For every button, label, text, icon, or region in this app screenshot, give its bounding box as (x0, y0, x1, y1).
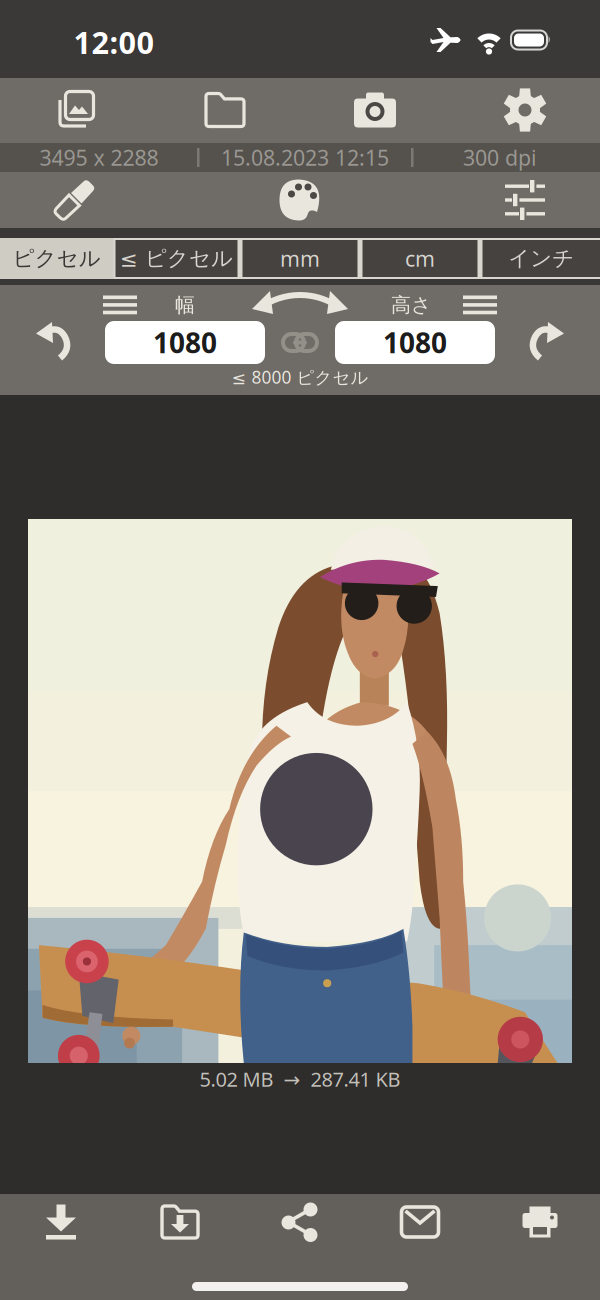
button[interactable]: Settings (465, 77, 585, 142)
button[interactable]: インチ (482, 240, 600, 277)
staticText: ≤ ピクセル (120, 245, 233, 272)
button[interactable]: Print (485, 1192, 595, 1252)
staticText: 300 dpi (463, 143, 537, 172)
staticText: mm (280, 244, 320, 273)
button[interactable]: 1080 (335, 321, 495, 364)
button[interactable]: Save (6, 1192, 116, 1252)
button[interactable]: Mail (365, 1192, 475, 1252)
staticText: インチ (508, 245, 574, 272)
staticText: 1080 (383, 324, 447, 361)
button[interactable]: Width presets (103, 295, 137, 314)
button[interactable]: Color palette (225, 172, 375, 228)
button[interactable]: Camera (315, 77, 435, 142)
button[interactable]: ≤ ピクセル (115, 240, 237, 277)
button[interactable]: Save to folder (125, 1192, 235, 1252)
button[interactable]: Redo (517, 310, 577, 370)
staticText: cm (405, 244, 435, 273)
staticText: 高さ (391, 293, 431, 317)
staticText: ピクセル (13, 245, 101, 272)
staticText: ≤ 8000 ピクセル (231, 365, 368, 388)
button[interactable]: Height presets (463, 295, 497, 314)
button[interactable]: mm (242, 240, 357, 277)
staticText: 12:00 (73, 22, 154, 62)
staticText: 幅 (175, 293, 195, 317)
button[interactable]: Lock aspect ratio (283, 330, 317, 355)
button[interactable]: Undo (23, 310, 83, 370)
button[interactable]: Eraser (0, 172, 150, 228)
button[interactable]: cm (362, 240, 477, 277)
staticText: 15.08.2023 12:15 (221, 143, 389, 172)
staticText: 3495 x 2288 (39, 143, 158, 172)
button[interactable]: Files (165, 77, 285, 142)
button[interactable]: Share (245, 1192, 355, 1252)
button[interactable]: 1080 (105, 321, 265, 364)
button[interactable]: ピクセル (0, 238, 113, 279)
button[interactable]: Adjustments (450, 172, 600, 228)
staticText: 5.02 MB → 287.41 KB (199, 1066, 400, 1092)
button[interactable]: Photo Library (15, 77, 135, 142)
staticText: 1080 (153, 324, 217, 361)
